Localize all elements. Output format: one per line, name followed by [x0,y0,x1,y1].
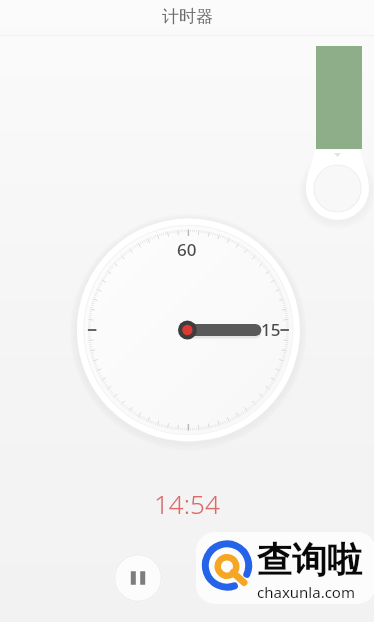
staticText: 15 [261,318,281,341]
button[interactable]: Pause [114,554,162,602]
staticText: chaxunla.com [257,582,355,602]
staticText: 查询啦 [257,538,362,582]
staticText: 60 [177,238,197,261]
staticText: 14:54 [154,486,220,521]
staticText: 计时器 [162,6,213,27]
